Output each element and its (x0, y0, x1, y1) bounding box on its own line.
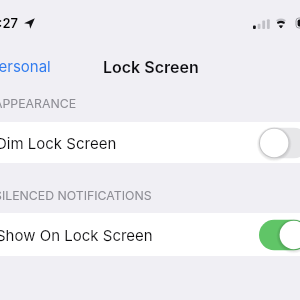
other: Wi-Fi (274, 18, 288, 29)
button[interactable]: Toggle on (259, 218, 300, 252)
other: Cellular signal (253, 19, 270, 29)
button[interactable]: Dim Lock Screen (0, 122, 300, 163)
button[interactable]: Toggle off (259, 126, 300, 160)
button[interactable]: Show On Lock Screen (0, 213, 300, 256)
staticText: Personal (0, 57, 51, 75)
staticText: Lock Screen (103, 57, 199, 76)
staticText: Dim Lock Screen (0, 134, 117, 152)
button[interactable]: Personal (0, 49, 51, 83)
staticText: 9:27 (0, 15, 19, 31)
staticText: SILENCED NOTIFICATIONS (0, 188, 152, 203)
other: Battery (296, 18, 300, 28)
staticText: APPEARANCE (0, 96, 77, 111)
staticText: Show On Lock Screen (0, 226, 153, 244)
other: Location in use (24, 18, 35, 29)
